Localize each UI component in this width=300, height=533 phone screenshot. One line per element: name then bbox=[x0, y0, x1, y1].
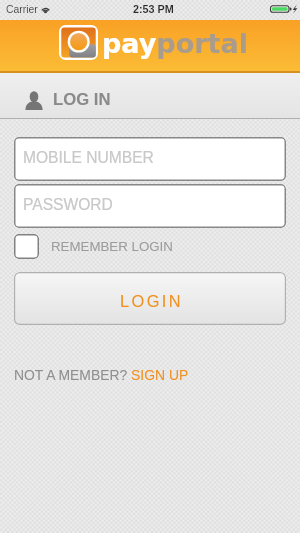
staticText: LOGIN bbox=[120, 292, 184, 310]
staticText: NOT A MEMBER? SIGN UP bbox=[14, 367, 189, 383]
staticText: Carrier bbox=[6, 4, 38, 16]
button[interactable]: PASSWORD bbox=[14, 184, 286, 228]
staticText: 2:53 PM bbox=[133, 3, 174, 15]
staticText: MOBILE NUMBER bbox=[23, 149, 154, 166]
staticText: payportal bbox=[102, 28, 248, 59]
staticText: REMEMBER LOGIN bbox=[51, 239, 173, 254]
button[interactable]: NOT A MEMBER? SIGN UP bbox=[14, 367, 189, 383]
button[interactable]: MOBILE NUMBER bbox=[14, 137, 286, 181]
staticText: LOG IN bbox=[53, 90, 111, 109]
staticText: PASSWORD bbox=[23, 196, 113, 213]
button[interactable]: LOG IN bbox=[0, 73, 300, 110]
button[interactable]: LOGIN bbox=[14, 272, 286, 325]
button[interactable]: REMEMBER LOGIN bbox=[14, 234, 173, 259]
